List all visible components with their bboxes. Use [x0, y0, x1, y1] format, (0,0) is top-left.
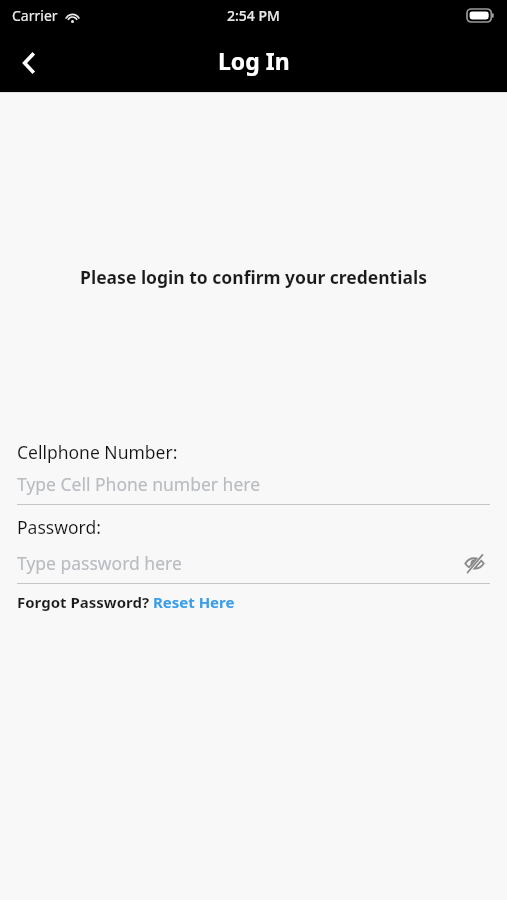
- button[interactable]: Password:: [17, 515, 490, 539]
- staticText: Please login to confirm your credentials: [16, 265, 491, 289]
- staticText: Forgot Password? Reset Here: [17, 592, 235, 612]
- staticText: Carrier: [12, 6, 58, 25]
- button[interactable]: Type password here: [17, 551, 458, 575]
- button[interactable]: Back: [6, 40, 52, 86]
- staticText: Log In: [218, 45, 290, 76]
- staticText: 2:54 PM: [227, 6, 280, 25]
- button[interactable]: Forgot Password? Reset Here: [17, 592, 235, 612]
- button[interactable]: Cellphone Number:: [0, 440, 507, 505]
- staticText: Cellphone Number:: [17, 440, 178, 464]
- staticText: Type Cell Phone number here: [17, 472, 261, 496]
- button[interactable]: Show password: [458, 547, 490, 579]
